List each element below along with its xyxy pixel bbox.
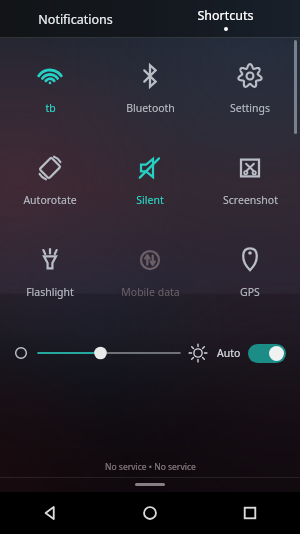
staticText: Screenshot xyxy=(223,193,278,207)
other: GPS xyxy=(235,245,265,275)
button[interactable]: Screenshot xyxy=(200,144,300,216)
button[interactable]: tb xyxy=(0,52,100,124)
button[interactable]: Recents xyxy=(200,492,300,534)
button[interactable]: Flashlight xyxy=(0,236,100,308)
other: Autorotate xyxy=(35,153,65,183)
other: Bluetooth xyxy=(135,61,165,91)
staticText: Shortcuts xyxy=(197,7,254,24)
other: Settings xyxy=(235,61,265,91)
button[interactable]: Silent xyxy=(100,144,200,216)
staticText: Autorotate xyxy=(23,193,77,207)
staticText: Bluetooth xyxy=(126,101,175,115)
other: Mobile data xyxy=(135,245,165,275)
staticText: No service • No service xyxy=(105,461,196,473)
button[interactable]: Settings xyxy=(200,52,300,124)
other: Flashlight xyxy=(35,245,65,275)
other: Screenshot xyxy=(235,153,265,183)
button[interactable]: Autorotate xyxy=(0,144,100,216)
button[interactable]: Notifications xyxy=(0,0,150,38)
button[interactable]: Shortcuts xyxy=(150,0,300,38)
staticText: tb xyxy=(45,101,56,115)
staticText: Mobile data xyxy=(121,285,180,299)
other: tb xyxy=(35,61,65,91)
other: Low brightness xyxy=(14,346,28,360)
staticText: Silent xyxy=(136,193,164,207)
staticText: Notifications xyxy=(38,11,113,28)
staticText: Flashlight xyxy=(26,285,74,299)
other: Silent xyxy=(135,153,165,183)
staticText: GPS xyxy=(240,285,260,299)
button[interactable] xyxy=(38,340,180,366)
button[interactable]: Auto brightness xyxy=(248,344,286,363)
button[interactable]: Back xyxy=(0,492,100,534)
other: High brightness xyxy=(190,345,206,361)
button[interactable]: Bluetooth xyxy=(100,52,200,124)
button[interactable]: Mobile data xyxy=(100,236,200,308)
button[interactable]: Home xyxy=(100,492,200,534)
staticText: Settings xyxy=(230,101,270,115)
staticText: Auto xyxy=(217,346,241,360)
button[interactable]: GPS xyxy=(200,236,300,308)
button[interactable]: Close panel xyxy=(135,483,165,486)
